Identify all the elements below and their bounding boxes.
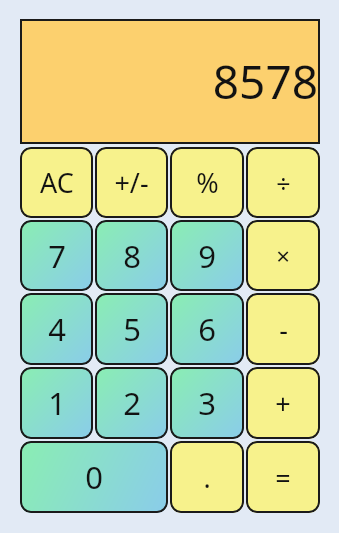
staticText: 9 (198, 235, 216, 277)
staticText: - (279, 311, 288, 348)
button[interactable]: 0 (20, 441, 168, 513)
button[interactable]: 4 (20, 293, 93, 365)
button[interactable]: 8 (95, 220, 168, 291)
button[interactable]: Divide (246, 147, 320, 218)
button[interactable]: Plus (246, 367, 320, 439)
staticText: 6 (198, 308, 216, 350)
button[interactable]: 2 (95, 367, 168, 439)
staticText: AC (40, 164, 74, 201)
staticText: × (276, 239, 290, 272)
button[interactable]: Minus (246, 293, 320, 365)
staticText: . (203, 459, 211, 496)
button[interactable]: Equals (246, 441, 320, 513)
staticText: ÷ (276, 166, 291, 200)
button[interactable]: 6 (170, 293, 244, 365)
staticText: % (196, 164, 219, 201)
button[interactable]: 5 (95, 293, 168, 365)
staticText: 8 (123, 235, 141, 277)
staticText: +/- (114, 164, 149, 201)
staticText: + (275, 385, 291, 422)
staticText: 5 (123, 308, 141, 350)
button[interactable]: Decimal point (170, 441, 244, 513)
staticText: 1 (48, 382, 66, 424)
staticText: 2 (123, 382, 141, 424)
staticText: 0 (85, 456, 103, 498)
button[interactable]: Multiply (246, 220, 320, 291)
button[interactable]: +/- (95, 147, 168, 218)
button[interactable]: 7 (20, 220, 93, 291)
button[interactable]: 3 (170, 367, 244, 439)
staticText: 7 (48, 235, 66, 277)
button[interactable]: AC (20, 147, 93, 218)
staticText: 8578 (212, 50, 318, 113)
staticText: = (275, 459, 291, 496)
staticText: 3 (198, 382, 216, 424)
button[interactable]: 9 (170, 220, 244, 291)
button[interactable]: % (170, 147, 244, 218)
button[interactable]: 1 (20, 367, 93, 439)
staticText: 4 (48, 308, 66, 350)
